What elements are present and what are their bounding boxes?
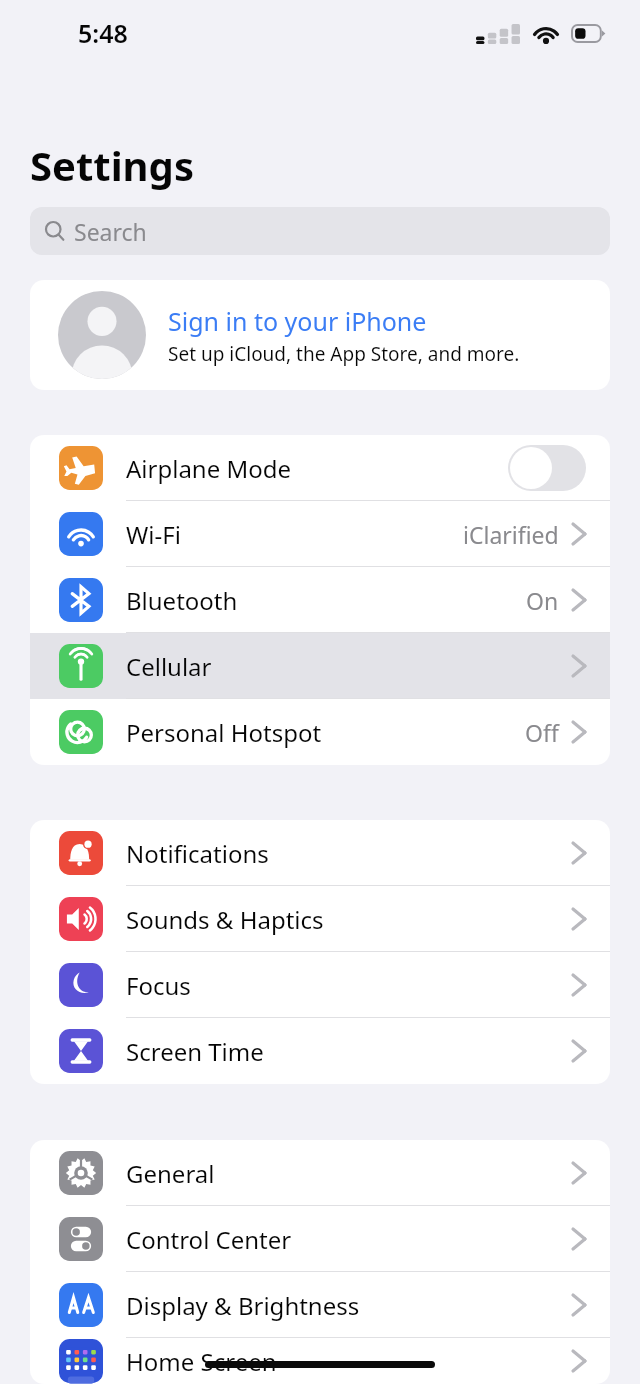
staticText: Off	[525, 717, 559, 748]
staticText: Focus	[126, 969, 191, 1002]
staticText: Screen Time	[126, 1035, 264, 1068]
staticText: 5:48	[78, 16, 128, 50]
staticText: iClarified	[463, 519, 559, 550]
button[interactable]: Wi-Fi	[30, 501, 610, 567]
button[interactable]: Screen Time	[30, 1018, 610, 1084]
button[interactable]: Bluetooth	[30, 567, 610, 633]
staticText: Notifications	[126, 837, 269, 870]
button[interactable]: Airplane Mode toggle	[508, 445, 586, 491]
staticText: Sounds & Haptics	[126, 903, 324, 936]
staticText: Set up iCloud, the App Store, and more.	[168, 341, 520, 367]
button[interactable]: Search	[30, 207, 610, 255]
button[interactable]: Home Screen	[30, 1338, 610, 1384]
staticText: Control Center	[126, 1223, 292, 1256]
button[interactable]: Airplane Mode	[30, 435, 610, 501]
button[interactable]: Sounds & Haptics	[30, 886, 610, 952]
button[interactable]: Personal Hotspot	[30, 699, 610, 765]
staticText: Settings	[30, 138, 194, 192]
button[interactable]: Sign in to your iPhone	[30, 280, 610, 390]
staticText: Search	[74, 216, 147, 247]
button[interactable]: Display & Brightness	[30, 1272, 610, 1338]
staticText: Home Screen	[126, 1345, 277, 1378]
button[interactable]: Focus	[30, 952, 610, 1018]
staticText: Personal Hotspot	[126, 716, 322, 749]
staticText: Bluetooth	[126, 584, 238, 617]
staticText: On	[526, 585, 559, 616]
button[interactable]: Cellular	[30, 633, 610, 699]
staticText: Sign in to your iPhone	[168, 304, 427, 338]
button[interactable]: General	[30, 1140, 610, 1206]
staticText: Cellular	[126, 650, 212, 683]
staticText: Display & Brightness	[126, 1289, 360, 1322]
staticText: Airplane Mode	[126, 452, 292, 485]
staticText: Wi-Fi	[126, 518, 181, 551]
button[interactable]: Notifications	[30, 820, 610, 886]
button[interactable]: Control Center	[30, 1206, 610, 1272]
staticText: General	[126, 1157, 215, 1190]
